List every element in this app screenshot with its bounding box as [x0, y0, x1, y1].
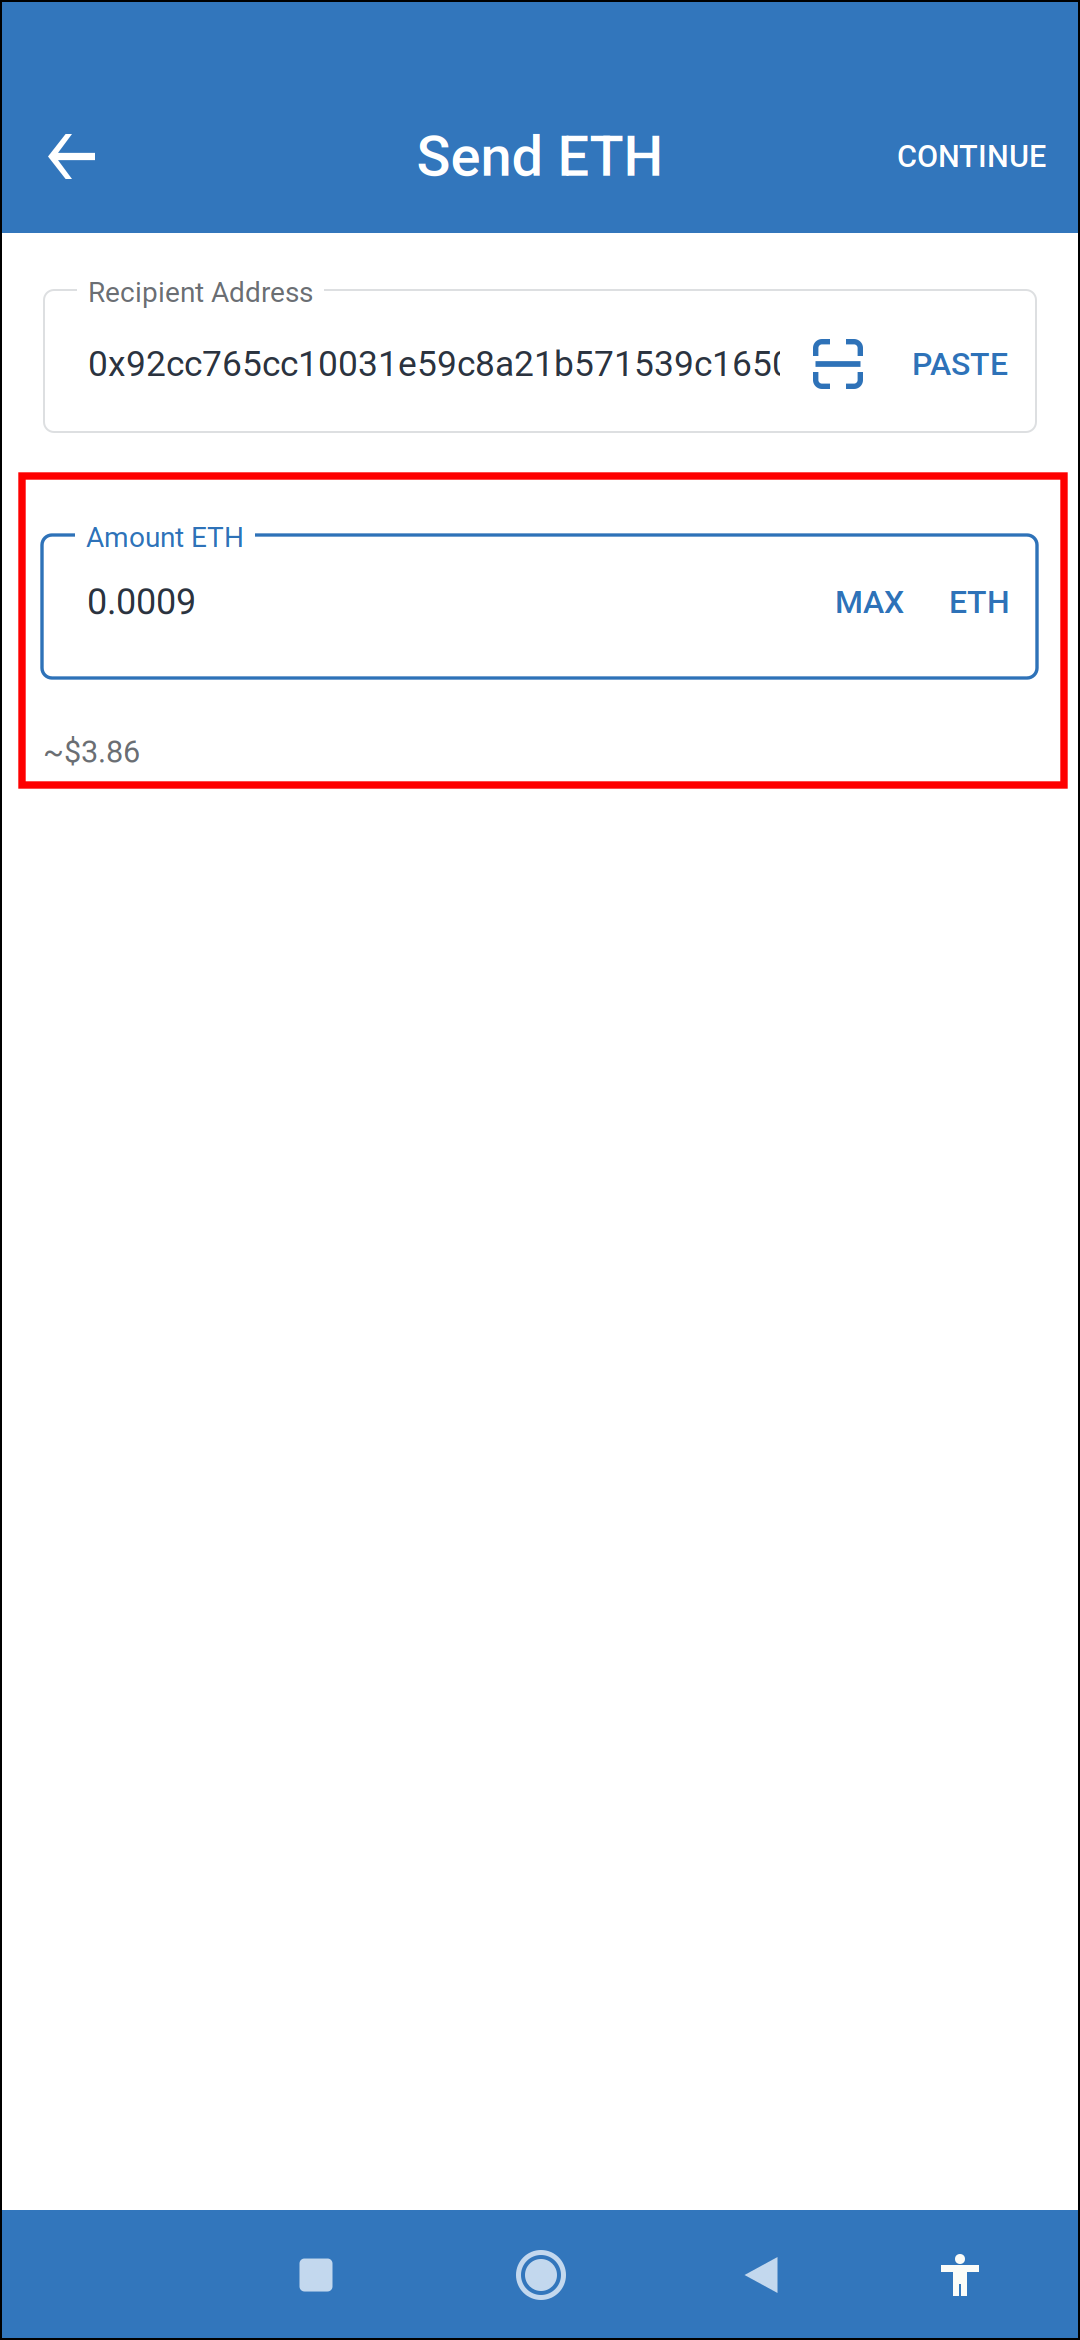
staticText: 0x92cc765cc10031e59c8a21b571539c1650 [88, 343, 792, 385]
button[interactable]: MAX [835, 583, 904, 621]
button[interactable]: Recent apps [226, 2210, 406, 2340]
staticText: ETH [949, 583, 1010, 621]
staticText: 0.0009 [87, 581, 196, 623]
button[interactable]: Scan QR code [800, 339, 872, 389]
button[interactable]: Home [451, 2210, 631, 2340]
button[interactable]: PASTE [872, 345, 1036, 383]
staticText: Amount ETH [86, 521, 244, 554]
staticText: MAX [835, 583, 904, 621]
staticText: Send ETH [416, 124, 663, 189]
button[interactable]: CONTINUE [857, 80, 1080, 233]
button[interactable]: Accessibility [870, 2210, 1050, 2340]
staticText: PASTE [912, 345, 1008, 383]
staticText: ~$3.86 [43, 734, 140, 770]
staticText: CONTINUE [897, 138, 1046, 174]
staticText: Recipient Address [88, 276, 313, 309]
button[interactable]: ETH [904, 583, 1037, 621]
button[interactable]: Back [671, 2210, 851, 2340]
button[interactable]: Back [0, 80, 138, 233]
